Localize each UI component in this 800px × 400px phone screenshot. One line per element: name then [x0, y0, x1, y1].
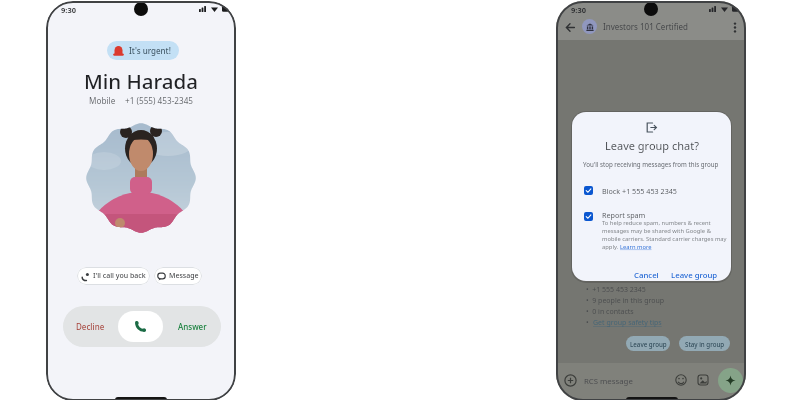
staticText: Stay in group — [685, 340, 725, 348]
staticText: Leave group — [671, 270, 718, 281]
button[interactable] — [584, 186, 593, 195]
staticText: Cancel — [634, 270, 659, 281]
staticText: • 0 in contacts — [586, 307, 634, 317]
staticText: Decline — [76, 321, 105, 332]
staticText: Message — [169, 271, 199, 281]
staticText: • — [586, 318, 593, 328]
button[interactable]: I'll call you back — [77, 267, 150, 285]
staticText: • 9 people in this group — [586, 296, 665, 306]
button[interactable]: Decline — [63, 306, 118, 347]
staticText: 9:30 — [61, 5, 76, 15]
staticText: 9:30 — [571, 5, 586, 15]
staticText: Answer — [178, 321, 207, 332]
button[interactable]: It's urgent! — [107, 41, 179, 60]
button[interactable] — [584, 212, 593, 221]
staticText: Leave group — [630, 340, 667, 348]
staticText: You'll stop receiving messages from this… — [583, 160, 719, 168]
button[interactable] — [118, 311, 163, 342]
staticText: Learn more — [620, 243, 652, 251]
button[interactable]: Cancel — [630, 267, 662, 281]
staticText: Mobile — [89, 95, 116, 106]
staticText: Investors 101 Certified — [603, 21, 688, 32]
staticText: Block +1 555 453 2345 — [602, 186, 677, 196]
staticText: RCS message — [584, 376, 633, 387]
staticText: It's urgent! — [129, 45, 171, 56]
staticText: • +1 555 453 2345 — [586, 285, 646, 295]
staticText: mobile carriers. Standard carrier charge… — [602, 235, 727, 243]
staticText: Report spam — [602, 210, 646, 220]
staticText: I'll call you back — [93, 271, 146, 281]
button[interactable]: Leave group — [668, 267, 720, 281]
staticText: Min Harada — [84, 67, 199, 95]
staticText: Leave group chat? — [605, 138, 699, 153]
staticText: Get group safety tips — [593, 318, 662, 328]
button[interactable]: Message — [154, 267, 202, 285]
button[interactable]: Answer — [163, 306, 221, 347]
staticText: +1 (555) 453-2345 — [125, 95, 194, 106]
button[interactable] — [718, 368, 743, 393]
staticText: apply. — [602, 243, 620, 251]
staticText: To help reduce spam, numbers & recent — [602, 219, 711, 227]
staticText: messages may be shared with Google & — [602, 227, 711, 235]
button[interactable]: Stay in group — [679, 336, 730, 351]
button[interactable]: Leave group — [626, 336, 670, 351]
